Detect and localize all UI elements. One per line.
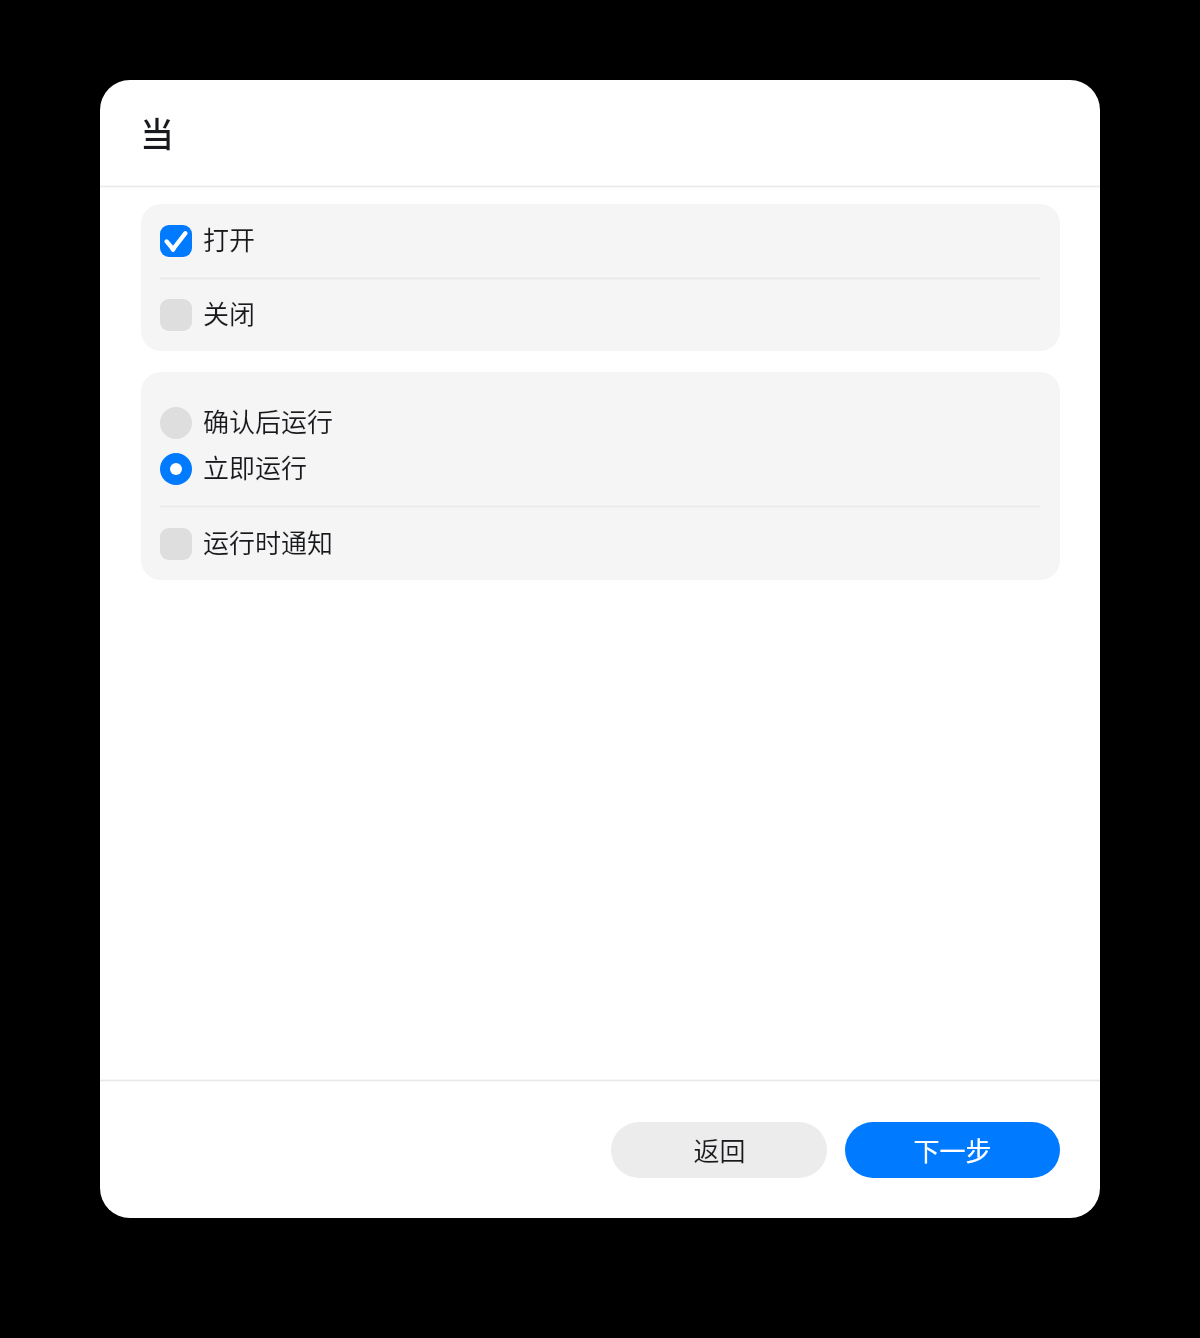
staticText: 打开	[203, 220, 256, 258]
staticText: 当	[140, 108, 174, 157]
button[interactable]: 立即运行	[141, 446, 1060, 492]
staticText: 确认后运行	[203, 402, 334, 440]
staticText: 立即运行	[203, 448, 308, 486]
button[interactable]: 下一步	[845, 1122, 1060, 1178]
staticText: 运行时通知	[203, 523, 334, 561]
button[interactable]: 确认后运行	[141, 400, 1060, 446]
staticText: 下一步	[913, 1131, 992, 1169]
button[interactable]: 返回	[611, 1122, 827, 1178]
button[interactable]: 关闭	[141, 279, 1060, 351]
staticText: 返回	[693, 1131, 746, 1169]
staticText: 关闭	[203, 294, 256, 332]
button[interactable]: 打开	[141, 204, 1060, 278]
button[interactable]: 运行时通知	[141, 507, 1060, 580]
